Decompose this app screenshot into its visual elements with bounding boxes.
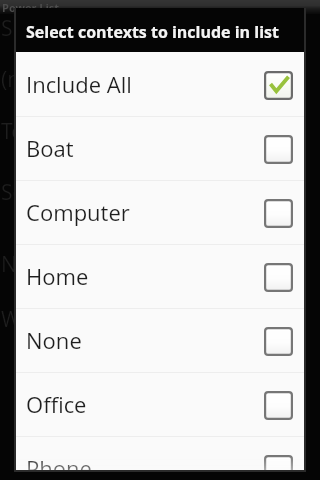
staticText: Today [1, 117, 59, 146]
staticText: Office [26, 389, 87, 419]
button[interactable]: Computer [16, 180, 304, 244]
staticText: None [26, 325, 82, 355]
staticText: Waiting for [1, 305, 108, 334]
button[interactable]: Phone [16, 436, 304, 470]
staticText: Select contexts to include in list [26, 21, 279, 43]
button[interactable]: Office [16, 372, 304, 436]
staticText: Someday / maybe [1, 178, 177, 207]
button[interactable]: Include All [16, 52, 304, 116]
staticText: Phone [26, 453, 92, 470]
staticText: Computer [26, 197, 130, 227]
staticText: Shopping list [1, 14, 128, 43]
button[interactable]: None [16, 308, 304, 372]
button[interactable]: Home [16, 244, 304, 308]
staticText: Home [26, 261, 89, 291]
staticText: (none) [1, 65, 64, 94]
staticText: Power List [2, 0, 60, 14]
staticText: Next actions [1, 250, 123, 279]
staticText: Include All [26, 69, 132, 99]
button[interactable]: Boat [16, 116, 304, 180]
staticText: Boat [26, 133, 74, 163]
